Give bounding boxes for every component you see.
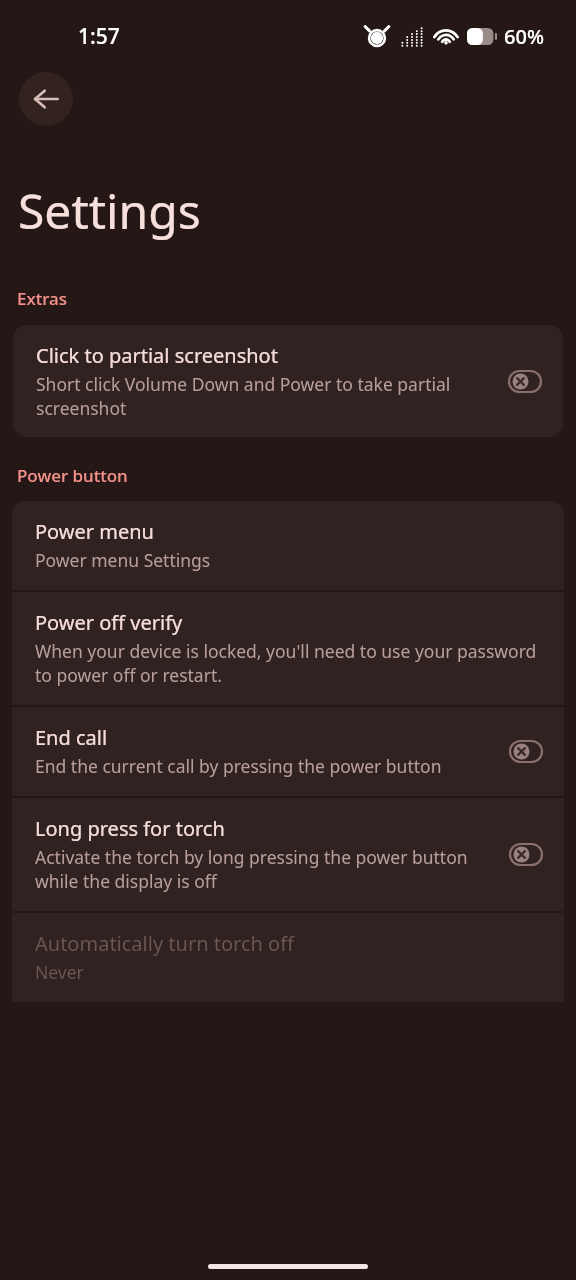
- button[interactable]: Toggle off: [510, 741, 542, 762]
- staticText: Activate the torch by long pressing the …: [35, 845, 500, 893]
- staticText: Click to partial screenshot: [36, 342, 278, 369]
- staticText: End call: [35, 724, 108, 751]
- staticText: When your device is locked, you'll need …: [35, 639, 540, 687]
- staticText: Never: [35, 960, 84, 984]
- staticText: Short click Volume Down and Power to tak…: [36, 372, 499, 420]
- staticText: Power menu: [35, 518, 154, 545]
- staticText: Power off verify: [35, 609, 183, 636]
- staticText: Automatically turn torch off: [35, 930, 294, 957]
- staticText: End the current call by pressing the pow…: [35, 754, 442, 778]
- button[interactable]: Click to partial screenshot: [13, 325, 563, 437]
- button[interactable]: Long press for torch: [12, 798, 564, 911]
- button[interactable]: End call: [12, 707, 564, 796]
- staticText: 60%: [504, 23, 544, 50]
- button[interactable]: Toggle off: [510, 844, 542, 865]
- staticText: 1:57: [78, 22, 120, 51]
- button[interactable]: Power menu: [12, 501, 564, 590]
- staticText: Power button: [17, 464, 128, 487]
- button[interactable]: Automatically turn torch off: [12, 913, 564, 1002]
- staticText: Extras: [17, 287, 68, 310]
- staticText: Long press for torch: [35, 815, 225, 842]
- button[interactable]: Toggle off: [509, 371, 541, 392]
- staticText: Settings: [18, 178, 201, 243]
- button[interactable]: Back: [19, 72, 73, 126]
- button[interactable]: Power off verify: [12, 592, 564, 705]
- staticText: Power menu Settings: [35, 548, 211, 572]
